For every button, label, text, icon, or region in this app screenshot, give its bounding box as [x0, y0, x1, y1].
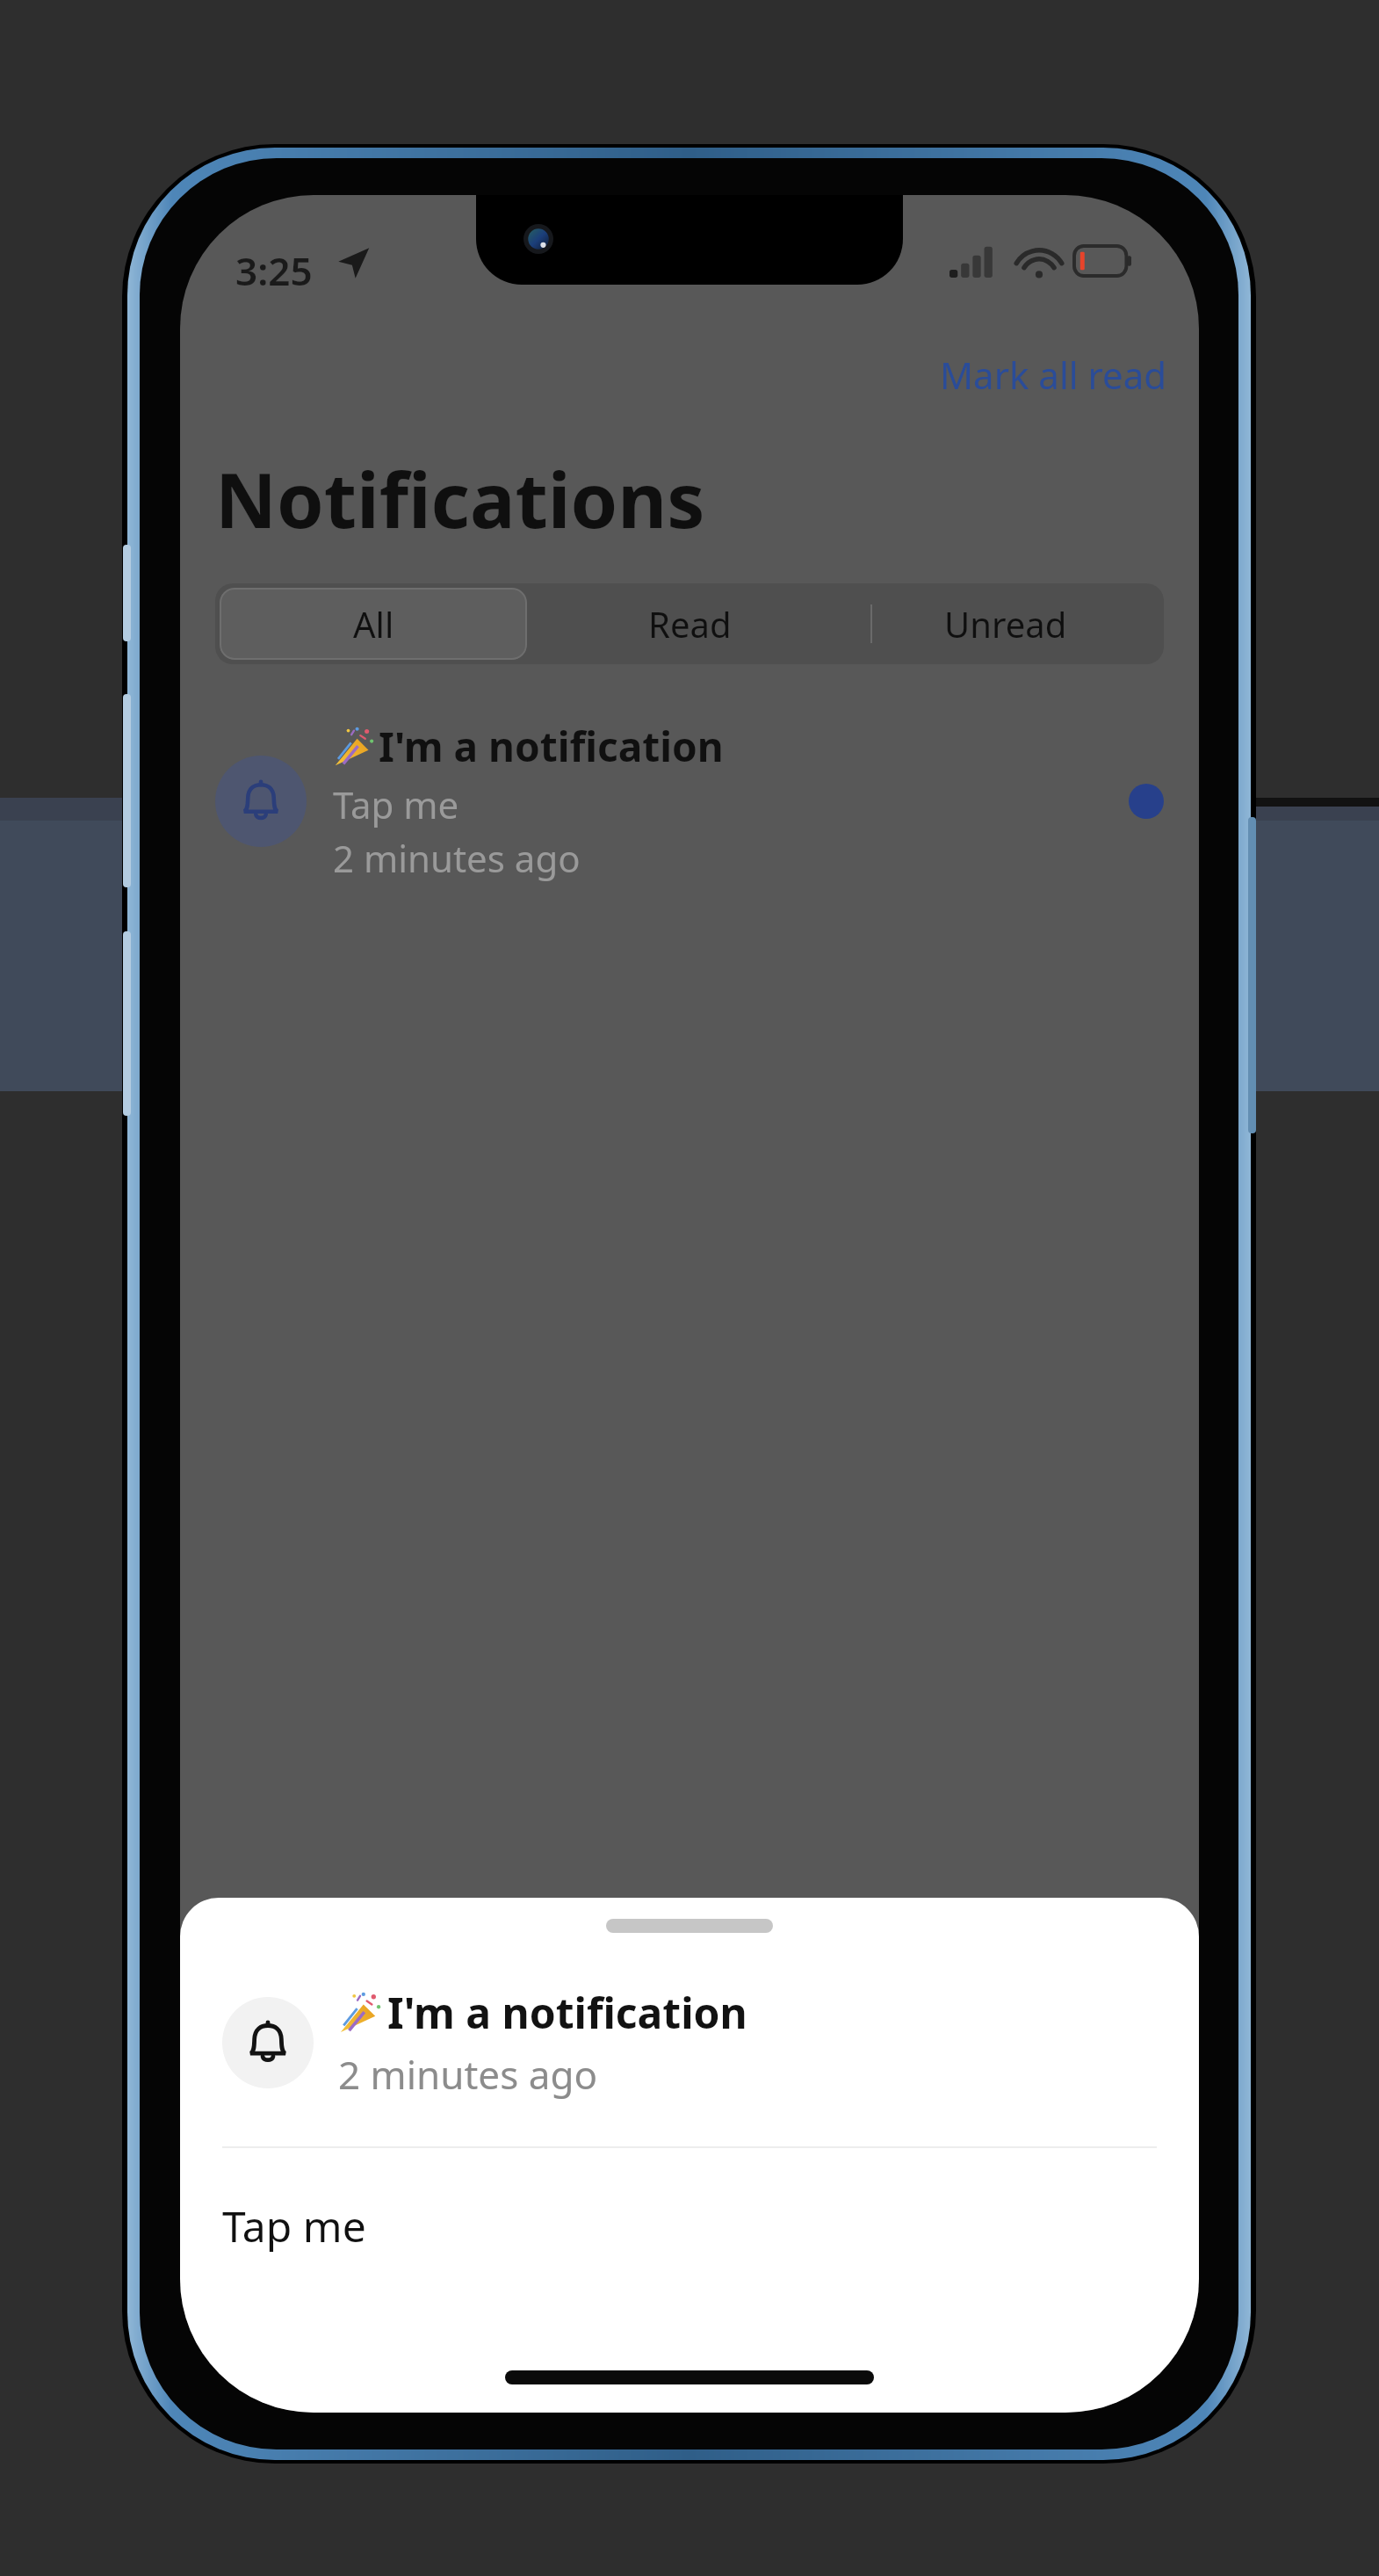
button[interactable]: Mark all read [908, 336, 1199, 414]
button[interactable]: All [220, 588, 527, 660]
staticText: Unread [944, 600, 1067, 648]
staticText: I'm a notification [387, 1984, 747, 2041]
staticText: Notifications [215, 447, 705, 550]
button[interactable]: Unread [848, 583, 1164, 664]
staticText: Read [648, 600, 732, 648]
staticText: Mark all read [940, 350, 1167, 400]
staticText: All [353, 600, 394, 648]
button[interactable]: Notification [180, 710, 1199, 892]
staticText: I'm a notification [379, 719, 724, 774]
other: Notification [239, 779, 283, 823]
staticText: Tap me [222, 2197, 366, 2254]
other: Notification [245, 2020, 291, 2066]
button[interactable]: Read [531, 583, 848, 664]
staticText: 2 minutes ago [333, 833, 581, 883]
staticText: 2 minutes ago [338, 2048, 598, 2101]
staticText: 3:25 [235, 244, 313, 297]
staticText: Tap me [333, 779, 459, 829]
